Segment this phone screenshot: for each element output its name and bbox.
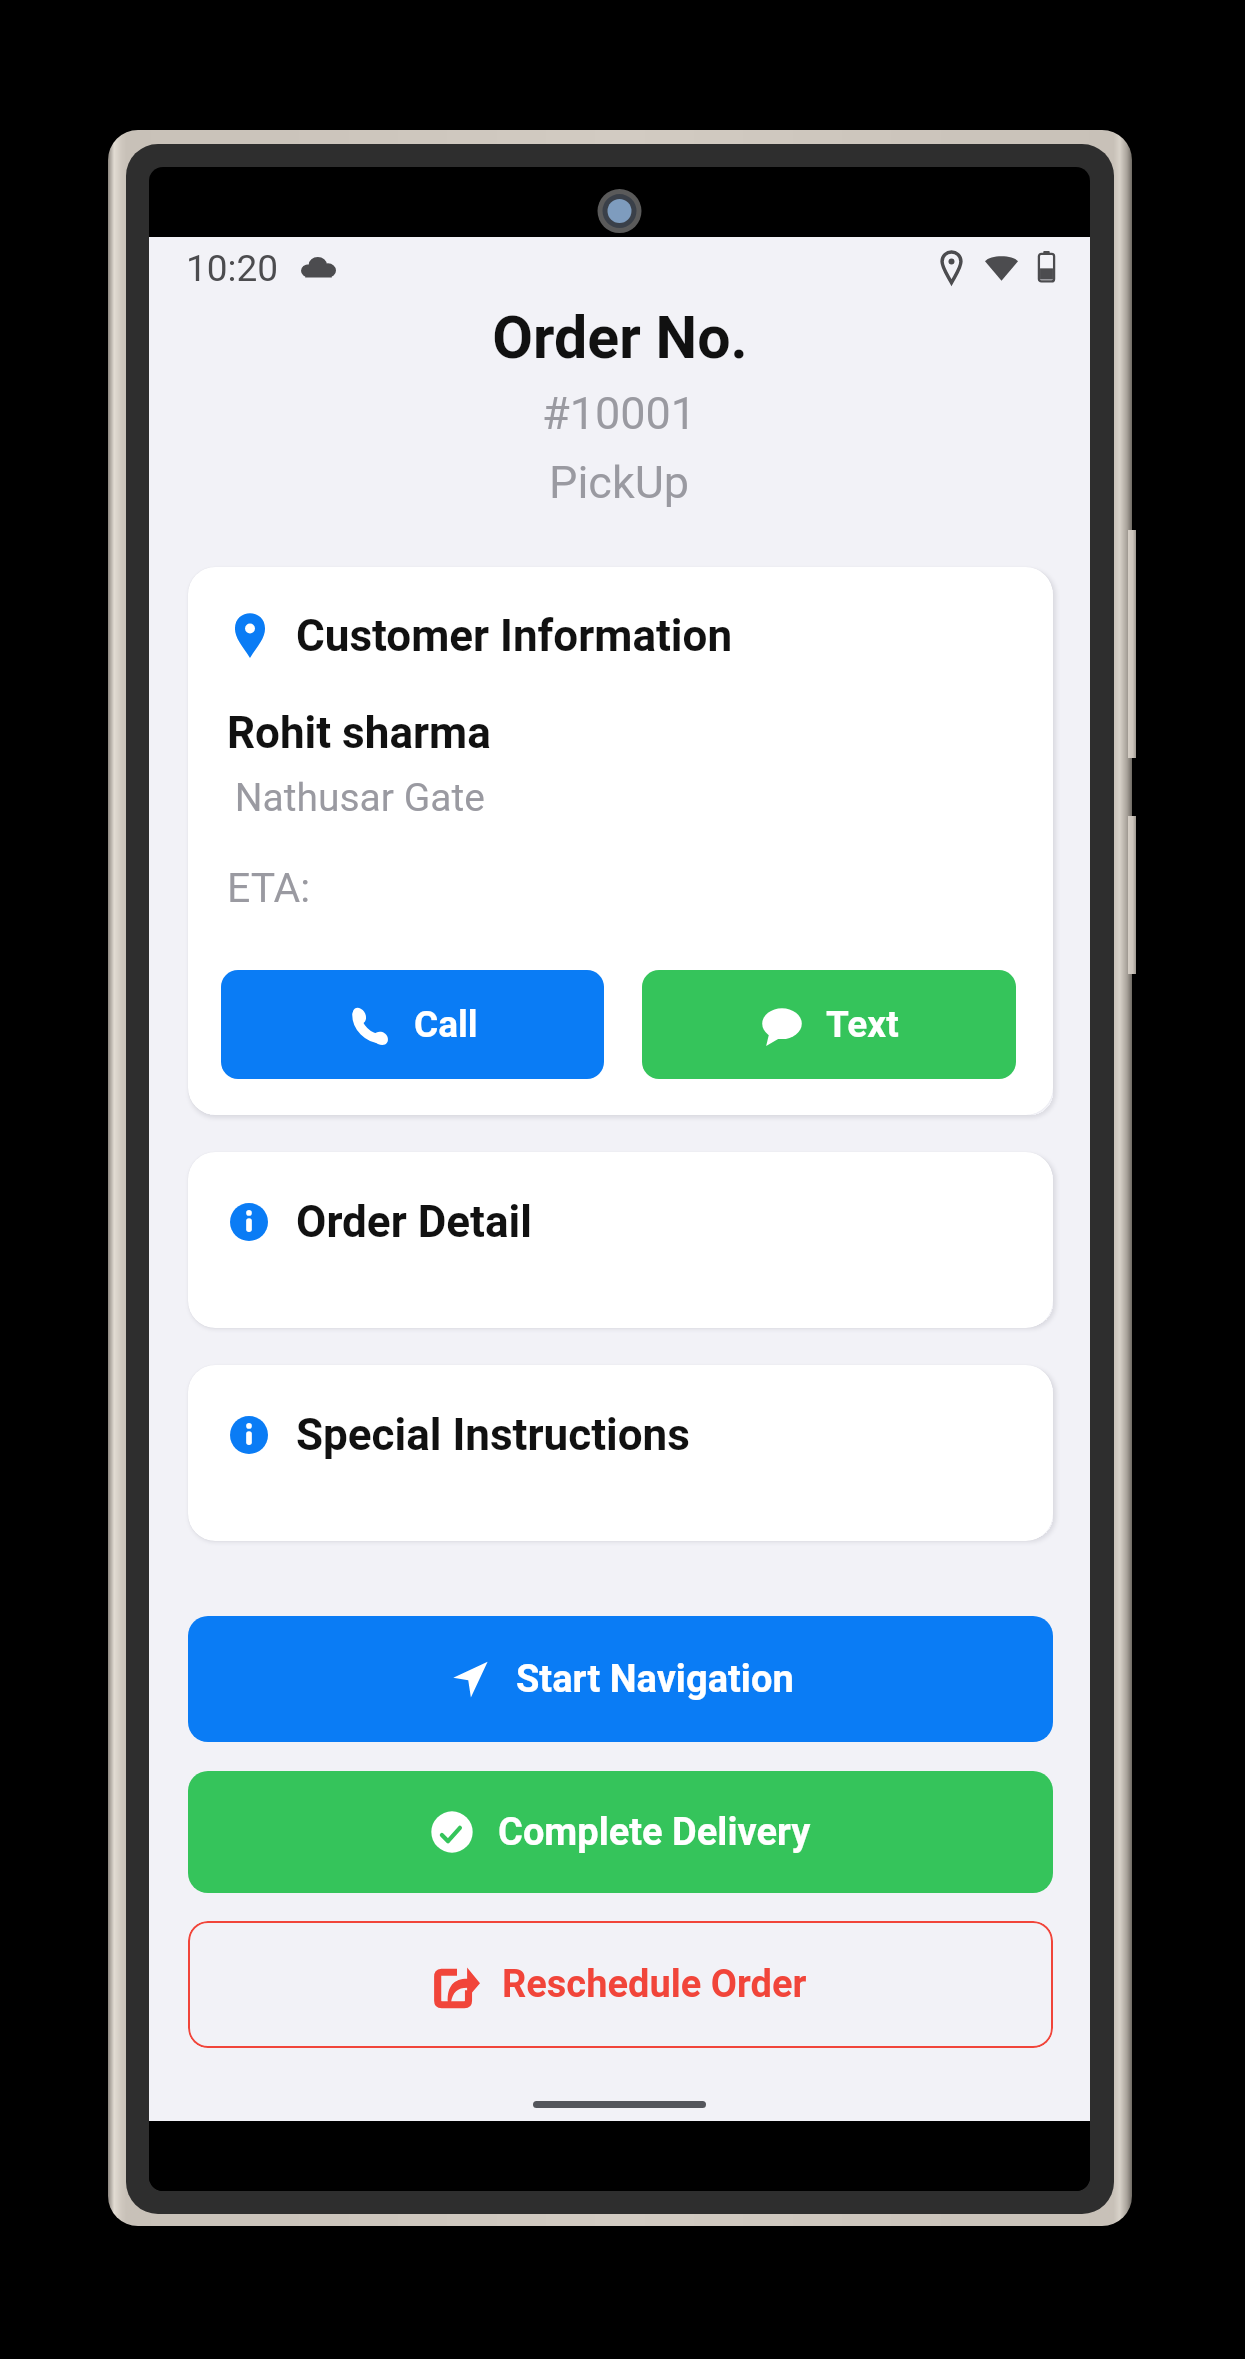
button[interactable]: Special Instructions bbox=[188, 1365, 1053, 1541]
button[interactable]: Call bbox=[221, 970, 604, 1079]
staticText: Customer Information bbox=[296, 610, 733, 662]
staticText: Order No. bbox=[492, 303, 748, 372]
staticText: Special Instructions bbox=[296, 1409, 690, 1461]
staticText: 10:20 bbox=[186, 247, 279, 290]
staticText: Reschedule Order bbox=[502, 1962, 807, 2007]
staticText: Order Detail bbox=[296, 1196, 532, 1248]
staticText: ETA: bbox=[227, 864, 311, 912]
button[interactable]: Complete Delivery bbox=[188, 1771, 1053, 1893]
button[interactable]: Order Detail bbox=[188, 1152, 1053, 1328]
staticText: Nathusar Gate bbox=[225, 775, 485, 821]
button[interactable]: Text bbox=[642, 970, 1016, 1079]
staticText: PickUp bbox=[549, 456, 690, 509]
staticText: #10001 bbox=[542, 387, 697, 440]
staticText: Rohit sharma bbox=[227, 707, 491, 759]
staticText: Start Navigation bbox=[516, 1657, 794, 1702]
staticText: Complete Delivery bbox=[498, 1810, 811, 1855]
button[interactable]: Reschedule Order bbox=[188, 1921, 1053, 2048]
button[interactable]: Start Navigation bbox=[188, 1616, 1053, 1742]
staticText: Call bbox=[414, 1003, 478, 1046]
staticText: Text bbox=[826, 1003, 899, 1046]
